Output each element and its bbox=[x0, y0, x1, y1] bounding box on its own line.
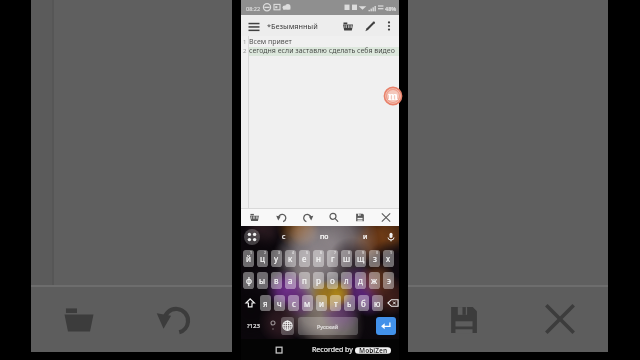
button[interactable]: ы bbox=[257, 272, 268, 289]
staticText: о bbox=[330, 275, 335, 286]
button[interactable]: Backspace bbox=[387, 295, 399, 311]
staticText: 1 bbox=[390, 250, 393, 255]
button[interactable]: по bbox=[303, 226, 345, 248]
staticText: MobiZen bbox=[359, 346, 388, 355]
staticText: щ bbox=[357, 253, 365, 264]
button[interactable]: ь bbox=[344, 295, 355, 311]
button[interactable]: и bbox=[316, 295, 327, 311]
button[interactable]: Shift bbox=[243, 295, 258, 311]
button[interactable]: в bbox=[271, 272, 282, 289]
button[interactable]: й bbox=[243, 250, 254, 267]
button[interactable]: и bbox=[345, 226, 385, 248]
staticText: 1 bbox=[250, 250, 253, 255]
staticText: ц bbox=[260, 253, 265, 264]
staticText: Русский bbox=[317, 323, 339, 330]
button[interactable]: а bbox=[285, 272, 296, 289]
button[interactable]: ц bbox=[257, 250, 268, 267]
button[interactable]: к bbox=[285, 250, 296, 267]
staticText: 1 bbox=[243, 38, 247, 46]
button[interactable]: Open file bbox=[338, 16, 358, 36]
button[interactable]: Voice input bbox=[384, 228, 398, 246]
staticText: 2 bbox=[243, 47, 247, 55]
staticText: п bbox=[302, 275, 307, 286]
button[interactable]: Русский bbox=[298, 317, 358, 335]
button[interactable]: д bbox=[355, 272, 366, 289]
staticText: р bbox=[316, 275, 321, 286]
staticText: 2 bbox=[264, 250, 267, 255]
button[interactable]: Recent apps bbox=[272, 343, 286, 357]
staticText: з bbox=[373, 253, 377, 264]
button[interactable]: щ bbox=[355, 250, 366, 267]
staticText: m bbox=[388, 89, 398, 103]
button[interactable]: Close bbox=[373, 208, 399, 226]
button[interactable]: Change language bbox=[281, 317, 294, 335]
staticText: и bbox=[319, 298, 324, 309]
staticText: е bbox=[302, 253, 307, 264]
staticText: 7 bbox=[334, 250, 337, 255]
button[interactable]: ю bbox=[372, 295, 383, 311]
staticText: ч bbox=[277, 298, 282, 309]
button[interactable]: Open bbox=[241, 208, 268, 226]
staticText: н bbox=[316, 253, 321, 264]
button[interactable]: Search bbox=[321, 208, 347, 226]
button[interactable]: б bbox=[358, 295, 369, 311]
button[interactable]: т bbox=[330, 295, 341, 311]
staticText: 8 bbox=[348, 250, 351, 255]
staticText: ф bbox=[246, 275, 252, 286]
staticText: с bbox=[292, 298, 296, 309]
staticText: м bbox=[304, 298, 311, 309]
staticText: *Безымянный bbox=[267, 21, 318, 31]
button[interactable]: о bbox=[327, 272, 338, 289]
button[interactable]: Settings bbox=[265, 317, 281, 335]
button[interactable]: э bbox=[383, 272, 394, 289]
button[interactable]: м bbox=[302, 295, 313, 311]
staticText: б bbox=[361, 298, 366, 309]
staticText: а bbox=[288, 275, 293, 286]
button[interactable]: ш bbox=[341, 250, 352, 267]
staticText: д bbox=[358, 275, 363, 286]
button[interactable]: ?123 bbox=[242, 317, 264, 335]
button[interactable]: н bbox=[313, 250, 324, 267]
staticText: 4 bbox=[292, 250, 295, 255]
button[interactable]: л bbox=[341, 272, 352, 289]
button[interactable]: Enter bbox=[376, 317, 396, 335]
staticText: ы bbox=[259, 275, 266, 286]
staticText: л bbox=[344, 275, 349, 286]
button[interactable]: ф bbox=[243, 272, 254, 289]
button[interactable]: Edit bbox=[360, 16, 380, 36]
button[interactable]: г bbox=[327, 250, 338, 267]
button[interactable]: з bbox=[369, 250, 380, 267]
staticText: я bbox=[263, 298, 268, 309]
staticText: к bbox=[288, 253, 293, 264]
staticText: т bbox=[334, 298, 338, 309]
button[interactable]: е bbox=[299, 250, 310, 267]
staticText: г bbox=[331, 253, 335, 264]
staticText: в bbox=[274, 275, 279, 286]
button[interactable]: х bbox=[383, 250, 394, 267]
staticText: 9 bbox=[362, 250, 365, 255]
button[interactable]: я bbox=[260, 295, 271, 311]
button[interactable]: ж bbox=[369, 272, 380, 289]
staticText: ь bbox=[347, 298, 352, 309]
staticText: ?123 bbox=[247, 322, 260, 330]
staticText: х bbox=[386, 253, 391, 264]
staticText: сегодня если заставлю сделать себя видео bbox=[249, 46, 395, 56]
button[interactable]: р bbox=[313, 272, 324, 289]
staticText: у bbox=[274, 253, 279, 264]
staticText: и bbox=[363, 232, 368, 242]
staticText: по bbox=[320, 232, 329, 242]
button[interactable]: у bbox=[271, 250, 282, 267]
staticText: ю bbox=[374, 298, 381, 309]
button[interactable]: Redo bbox=[295, 208, 321, 226]
button[interactable]: п bbox=[299, 272, 310, 289]
button[interactable]: Menu bbox=[244, 16, 264, 36]
button[interactable]: Keyboard settings bbox=[244, 229, 260, 245]
button[interactable]: Save bbox=[347, 208, 373, 226]
button[interactable]: More options bbox=[380, 17, 398, 35]
staticText: 3 bbox=[278, 250, 281, 255]
button[interactable]: Undo bbox=[268, 208, 295, 226]
button[interactable]: с bbox=[265, 226, 303, 248]
button[interactable]: ч bbox=[274, 295, 285, 311]
button[interactable]: с bbox=[288, 295, 299, 311]
staticText: 48% bbox=[385, 5, 397, 12]
